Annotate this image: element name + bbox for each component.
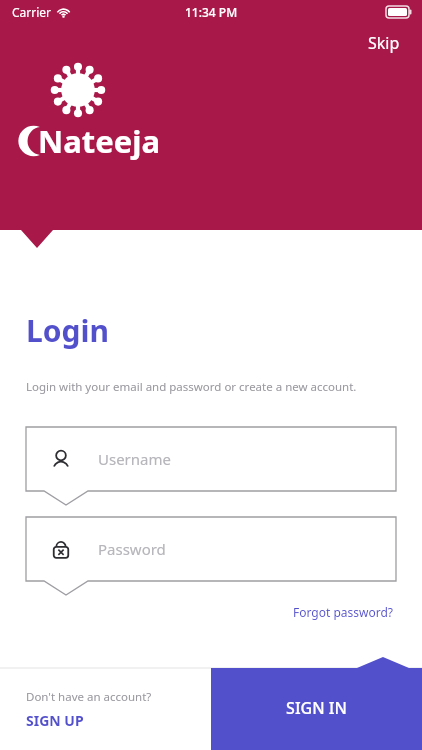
button[interactable]: Skip [362, 28, 406, 58]
staticText: SIGN UP [26, 711, 84, 730]
staticText: 11:34 PM [185, 4, 238, 20]
button[interactable]: Username [26, 427, 396, 497]
button[interactable]: Password [26, 517, 396, 587]
staticText: Login with your email and password or cr… [26, 379, 357, 395]
staticText: Skip [368, 32, 400, 54]
staticText: Don't have an account? [26, 689, 152, 705]
staticText: Password [98, 539, 166, 559]
staticText: SIGN IN [286, 697, 347, 719]
staticText: Carrier [12, 4, 52, 20]
staticText: Username [98, 449, 171, 469]
staticText: Forgot password? [293, 604, 394, 620]
button[interactable]: SIGN IN [211, 657, 422, 750]
button[interactable]: Don't have an account? [0, 681, 162, 738]
staticText: Nateeja [38, 120, 161, 162]
button[interactable]: Forgot password? [291, 601, 396, 623]
staticText: Login [26, 310, 109, 351]
